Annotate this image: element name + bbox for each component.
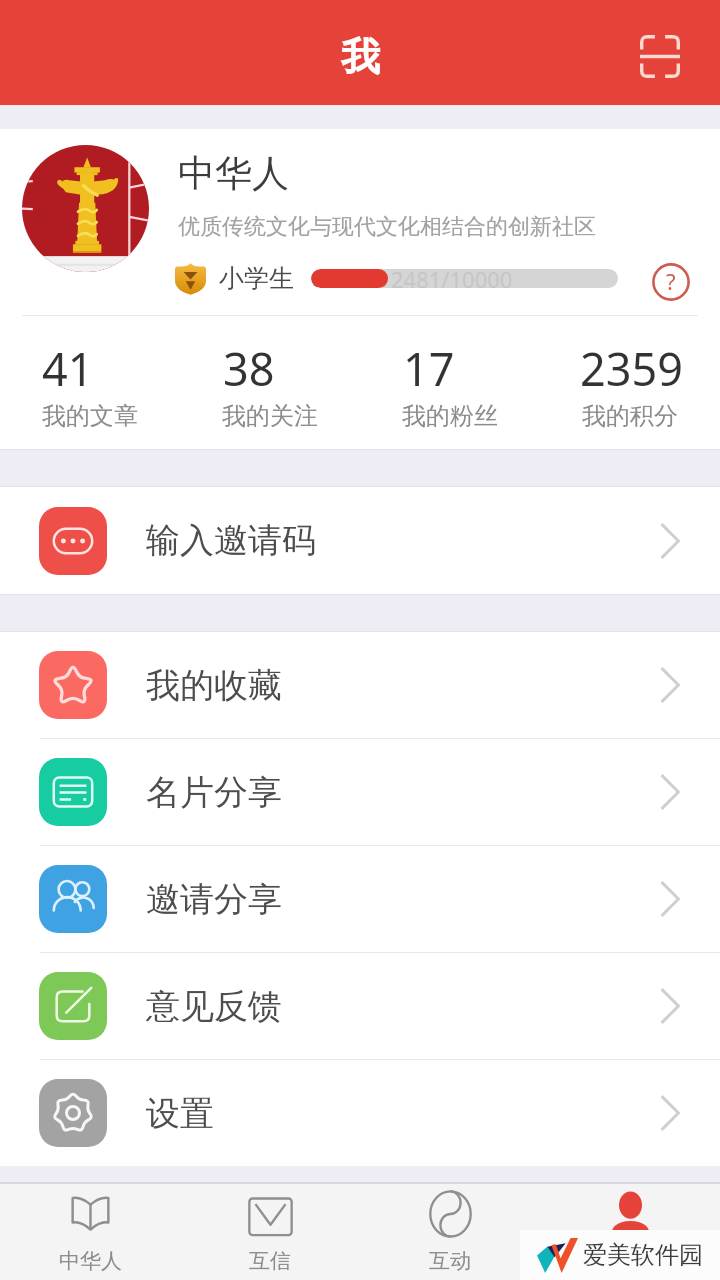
staticText: 我: [341, 32, 380, 81]
staticText: 邀请分享: [146, 878, 282, 921]
staticText: 我: [620, 1248, 641, 1274]
staticText: 名片分享: [146, 771, 282, 814]
button[interactable]: 名片分享: [0, 739, 720, 845]
staticText: 优质传统文化与现代文化相结合的创新社区: [178, 213, 596, 241]
staticText: 17: [403, 338, 455, 399]
staticText: 我的积分: [582, 401, 678, 431]
staticText: 中华人: [178, 150, 289, 197]
button[interactable]: 互动: [360, 1184, 540, 1280]
button[interactable]: 41: [0, 316, 180, 449]
staticText: 41: [42, 338, 94, 399]
button[interactable]: 邀请分享: [0, 846, 720, 952]
staticText: 我的收藏: [146, 664, 282, 707]
button[interactable]: 38: [180, 316, 360, 449]
button[interactable]: 我的收藏: [0, 632, 720, 738]
staticText: 互动: [429, 1248, 471, 1274]
staticText: 小学生: [219, 263, 294, 294]
button[interactable]: Profile avatar: [22, 145, 149, 272]
button[interactable]: Scan QR code: [629, 25, 691, 87]
button[interactable]: 我: [540, 1184, 720, 1280]
button[interactable]: 设置: [0, 1060, 720, 1166]
button[interactable]: 意见反馈: [0, 953, 720, 1059]
staticText: 爱美软件园: [583, 1240, 703, 1270]
staticText: ?: [666, 266, 676, 296]
button[interactable]: 17: [360, 316, 540, 449]
staticText: 设置: [146, 1092, 214, 1135]
staticText: 我的关注: [222, 401, 318, 431]
staticText: 意见反馈: [146, 985, 282, 1028]
staticText: 输入邀请码: [146, 519, 316, 562]
staticText: 中华人: [59, 1248, 122, 1274]
button[interactable]: 中华人: [0, 1184, 180, 1280]
staticText: 2359: [580, 338, 683, 399]
staticText: 我的文章: [42, 401, 138, 431]
staticText: 我的粉丝: [402, 401, 498, 431]
staticText: 2481/10000: [391, 264, 513, 292]
staticText: 38: [223, 338, 275, 399]
staticText: 互信: [249, 1248, 291, 1274]
button[interactable]: 互信: [180, 1184, 360, 1280]
button[interactable]: Help: [650, 261, 692, 303]
button[interactable]: 输入邀请码: [0, 487, 720, 594]
button[interactable]: 2359: [540, 316, 720, 449]
